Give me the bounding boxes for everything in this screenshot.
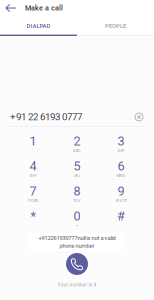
staticText: GHI — [29, 173, 36, 178]
staticText: DIALPAD — [26, 23, 50, 29]
button[interactable]: 0 — [55, 207, 99, 232]
button[interactable]: 3 — [99, 132, 143, 157]
staticText: 4 — [29, 159, 36, 173]
staticText: # — [117, 209, 125, 223]
staticText: +912261930777null is not a valid — [38, 235, 115, 241]
button[interactable]: Clear — [132, 110, 146, 124]
button[interactable]: 7 — [11, 182, 55, 207]
staticText: 2 — [73, 134, 80, 148]
staticText: Your number is: 4 — [57, 282, 96, 288]
staticText: WXYZ — [115, 198, 126, 203]
staticText: PEOPLE — [105, 23, 126, 29]
staticText: 8 — [73, 184, 80, 198]
staticText: PQRS — [28, 198, 38, 203]
staticText: 5 — [73, 159, 80, 173]
button[interactable]: 1 — [11, 132, 55, 157]
staticText: ABC — [73, 148, 81, 153]
button[interactable]: DIALPAD — [0, 16, 77, 36]
button[interactable]: Call — [66, 253, 88, 275]
staticText: TUV — [73, 198, 81, 203]
button[interactable]: Back — [0, 0, 19, 16]
staticText: 0 — [73, 209, 80, 223]
staticText: * — [30, 209, 35, 223]
staticText: 6 — [117, 159, 124, 173]
button[interactable]: # — [99, 207, 143, 232]
staticText: DEF — [117, 148, 124, 153]
button[interactable]: 8 — [55, 182, 99, 207]
staticText: 9 — [117, 184, 124, 198]
staticText: JKL — [73, 173, 80, 178]
staticText: MNO — [116, 173, 125, 178]
staticText: Make a call — [25, 4, 63, 12]
staticText: 3 — [117, 134, 124, 148]
staticText: +91 22 6193 0777 — [10, 111, 82, 123]
button[interactable]: 2 — [55, 132, 99, 157]
button[interactable]: 9 — [99, 182, 143, 207]
staticText: phone number — [59, 242, 94, 249]
staticText: 1 — [29, 134, 36, 148]
button[interactable]: * — [11, 207, 55, 232]
button[interactable]: 5 — [55, 157, 99, 182]
button[interactable]: 4 — [11, 157, 55, 182]
button[interactable]: PEOPLE — [77, 16, 154, 36]
staticText: + — [76, 223, 78, 228]
staticText: 7 — [29, 184, 36, 198]
button[interactable]: 6 — [99, 157, 143, 182]
